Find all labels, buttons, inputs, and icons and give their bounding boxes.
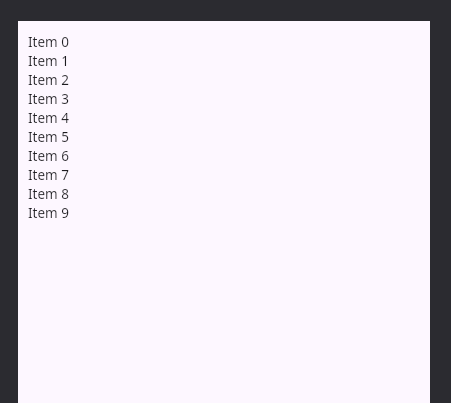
button[interactable]: Item 2 [18,70,430,89]
button[interactable]: Item 3 [18,89,430,108]
button[interactable]: Item 8 [18,184,430,203]
staticText: Item 1 [28,52,69,70]
button[interactable]: Item 4 [18,108,430,127]
staticText: Item 5 [28,128,69,146]
staticText: Item 7 [28,166,69,184]
staticText: Item 3 [28,90,69,108]
button[interactable]: Item 0 [18,32,430,51]
staticText: Item 4 [28,109,69,127]
staticText: Item 6 [28,147,69,165]
staticText: Item 0 [28,33,69,51]
button[interactable]: Item 7 [18,165,430,184]
button[interactable]: Item 5 [18,127,430,146]
button[interactable]: Item 1 [18,51,430,70]
button[interactable]: Item 6 [18,146,430,165]
staticText: Item 2 [28,71,69,89]
staticText: Item 8 [28,185,69,203]
staticText: Item 9 [28,204,69,222]
button[interactable]: Item 9 [18,203,430,222]
